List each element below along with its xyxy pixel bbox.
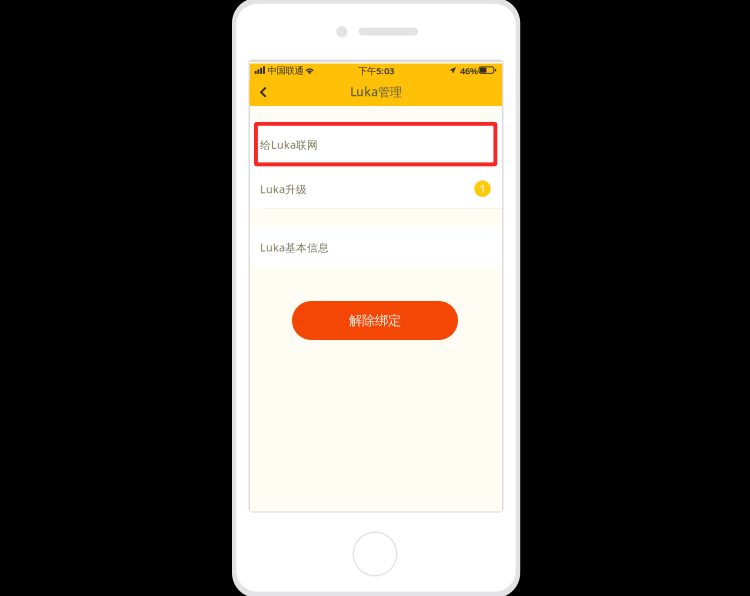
- button[interactable]: Luka基本信息: [250, 226, 502, 268]
- staticText: 46%: [460, 64, 478, 77]
- staticText: 中国联通: [267, 65, 303, 76]
- button[interactable]: 给Luka联网: [250, 121, 502, 167]
- staticText: Luka管理: [350, 83, 402, 99]
- staticText: 给Luka联网: [260, 138, 318, 152]
- button[interactable]: 解除绑定: [292, 301, 458, 340]
- staticText: 解除绑定: [349, 312, 401, 329]
- button[interactable]: Back: [249, 81, 277, 104]
- staticText: Luka基本信息: [260, 240, 329, 255]
- staticText: 下午5:03: [358, 64, 394, 77]
- staticText: Luka升级: [260, 182, 307, 196]
- staticText: 1: [479, 182, 485, 196]
- button[interactable]: Luka升级: [250, 167, 502, 209]
